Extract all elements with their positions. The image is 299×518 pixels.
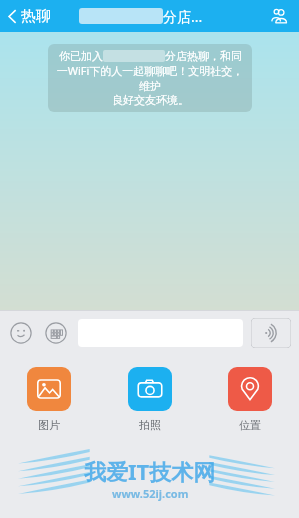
button[interactable]: Emoji <box>8 320 34 346</box>
staticText: 我爱IT技术网 <box>84 456 216 486</box>
button[interactable]: 图片 <box>14 367 84 432</box>
staticText: 拍照 <box>139 418 161 432</box>
button[interactable]: 热聊 <box>0 3 57 30</box>
staticText: 图片 <box>38 418 60 432</box>
button[interactable]: Keyboard <box>43 320 69 346</box>
button[interactable]: Voice message <box>251 318 291 348</box>
staticText: 一WiFi下的人一起聊聊吧！文明社交，维护 <box>54 63 246 93</box>
staticText: 分店热聊，和同 <box>165 49 242 63</box>
button[interactable]: 拍照 <box>115 367 185 432</box>
staticText: www.52ij.com <box>112 486 189 501</box>
staticText: 分店... <box>163 7 203 26</box>
staticText: 你已加入 <box>59 49 103 63</box>
staticText: 良好交友环境。 <box>112 93 189 107</box>
button[interactable]: Members <box>263 0 295 32</box>
staticText: 位置 <box>239 418 261 432</box>
button[interactable]: 位置 <box>215 367 285 432</box>
staticText: 热聊 <box>21 7 51 26</box>
